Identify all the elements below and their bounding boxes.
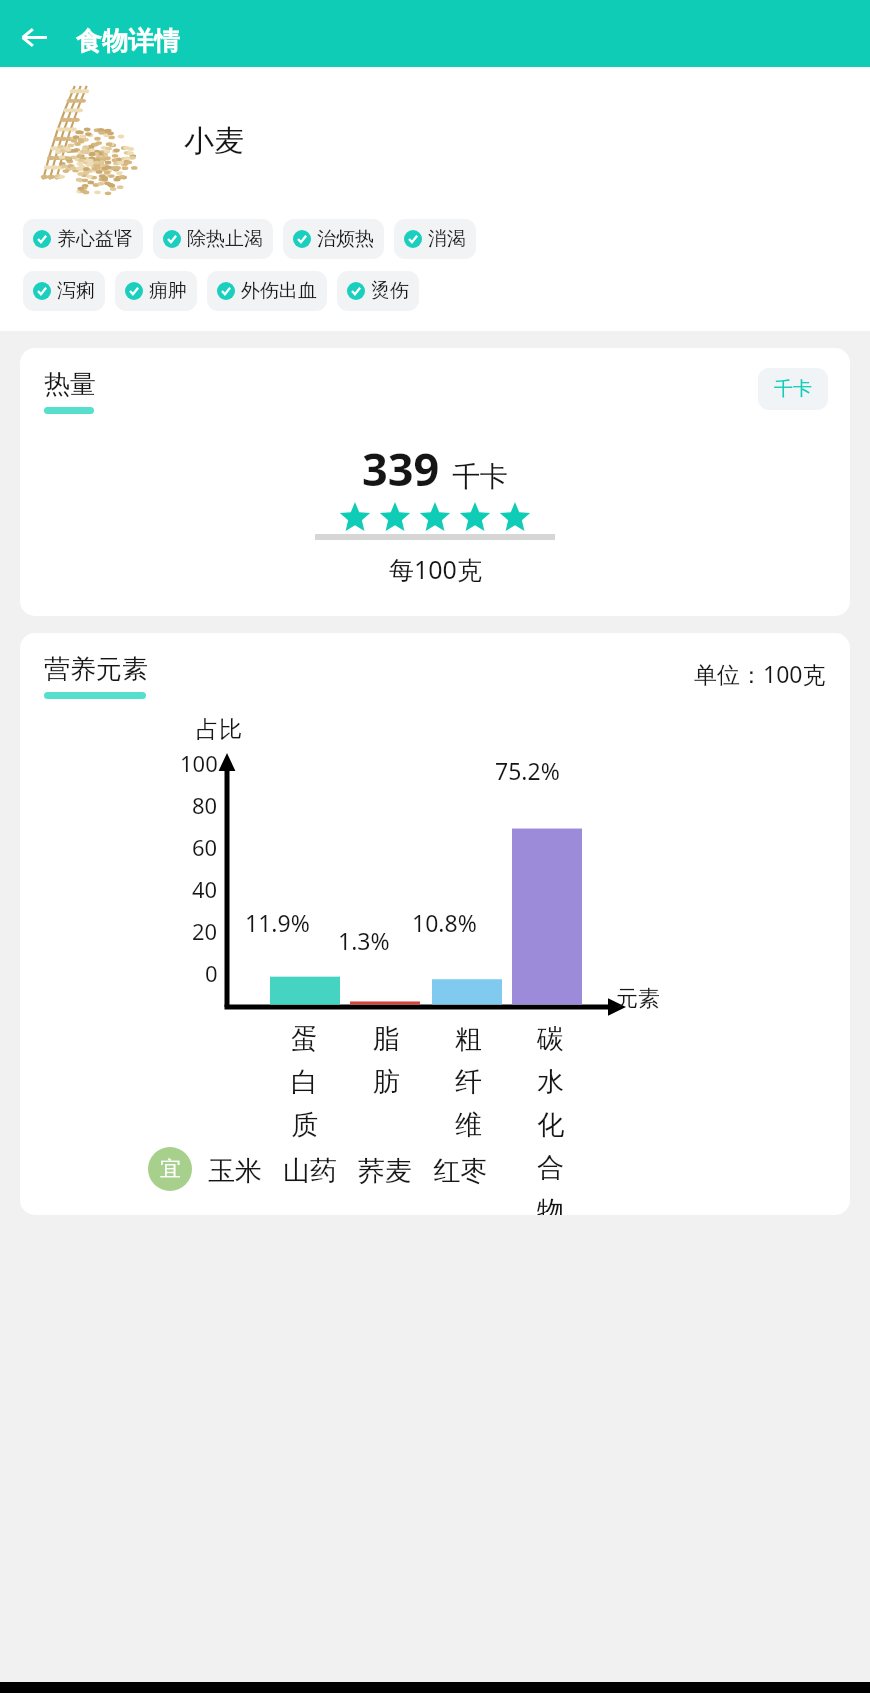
button[interactable]: 养心益肾 — [23, 219, 143, 259]
button[interactable]: 外伤出血 — [207, 271, 327, 311]
staticText: 泻痢 — [57, 279, 95, 303]
staticText: 合 — [537, 1151, 564, 1185]
staticText: 玉米 山药 荞麦 红枣 — [208, 1151, 488, 1188]
staticText: 小麦 — [184, 122, 244, 160]
button[interactable]: 治烦热 — [283, 219, 384, 259]
staticText: 热量 — [44, 368, 96, 401]
staticText: 蛋 — [291, 1022, 318, 1056]
staticText: 消渴 — [428, 227, 466, 251]
staticText: 0 — [205, 958, 218, 988]
button[interactable]: 泻痢 — [23, 271, 105, 311]
staticText: 粗 — [455, 1022, 482, 1056]
staticText: 除热止渴 — [187, 227, 263, 251]
staticText: 占比 — [196, 715, 242, 744]
staticText: 肪 — [373, 1065, 400, 1099]
staticText: 外伤出血 — [241, 279, 317, 303]
staticText: 水 — [537, 1065, 564, 1099]
staticText: 化 — [537, 1108, 564, 1142]
staticText: 千卡 — [774, 377, 812, 401]
staticText: 75.2% — [495, 755, 560, 786]
staticText: 20 — [192, 916, 218, 946]
staticText: 元素 — [616, 985, 660, 1013]
staticText: 物 — [537, 1194, 564, 1215]
button[interactable]: 千卡 — [758, 368, 828, 410]
staticText: 1.3% — [338, 925, 390, 956]
staticText: 10.8% — [412, 907, 477, 938]
staticText: 单位：100克 — [694, 658, 826, 689]
staticText: 纤 — [455, 1065, 482, 1099]
staticText: 100 — [180, 748, 218, 778]
staticText: 白 — [291, 1065, 318, 1099]
staticText: 339 — [362, 438, 440, 499]
staticText: 治烦热 — [317, 227, 374, 251]
button[interactable]: 痈肿 — [115, 271, 197, 311]
staticText: 维 — [455, 1108, 482, 1142]
staticText: 营养元素 — [44, 653, 148, 686]
staticText: 质 — [291, 1108, 318, 1142]
staticText: 千卡 — [452, 459, 508, 494]
staticText: 养心益肾 — [57, 227, 133, 251]
staticText: 宜 — [160, 1156, 181, 1182]
staticText: 烫伤 — [371, 279, 409, 303]
staticText: 脂 — [373, 1022, 400, 1056]
staticText: 40 — [192, 874, 218, 904]
staticText: 食物详情 — [76, 25, 180, 58]
button[interactable]: 除热止渴 — [153, 219, 273, 259]
staticText: 痈肿 — [149, 279, 187, 303]
staticText: 每100克 — [389, 552, 482, 586]
staticText: 碳 — [537, 1022, 564, 1056]
staticText: 11.9% — [245, 907, 310, 938]
button[interactable]: Back — [12, 15, 56, 59]
staticText: 80 — [192, 790, 218, 820]
button[interactable]: 消渴 — [394, 219, 476, 259]
button[interactable]: 烫伤 — [337, 271, 419, 311]
staticText: 60 — [192, 832, 218, 862]
